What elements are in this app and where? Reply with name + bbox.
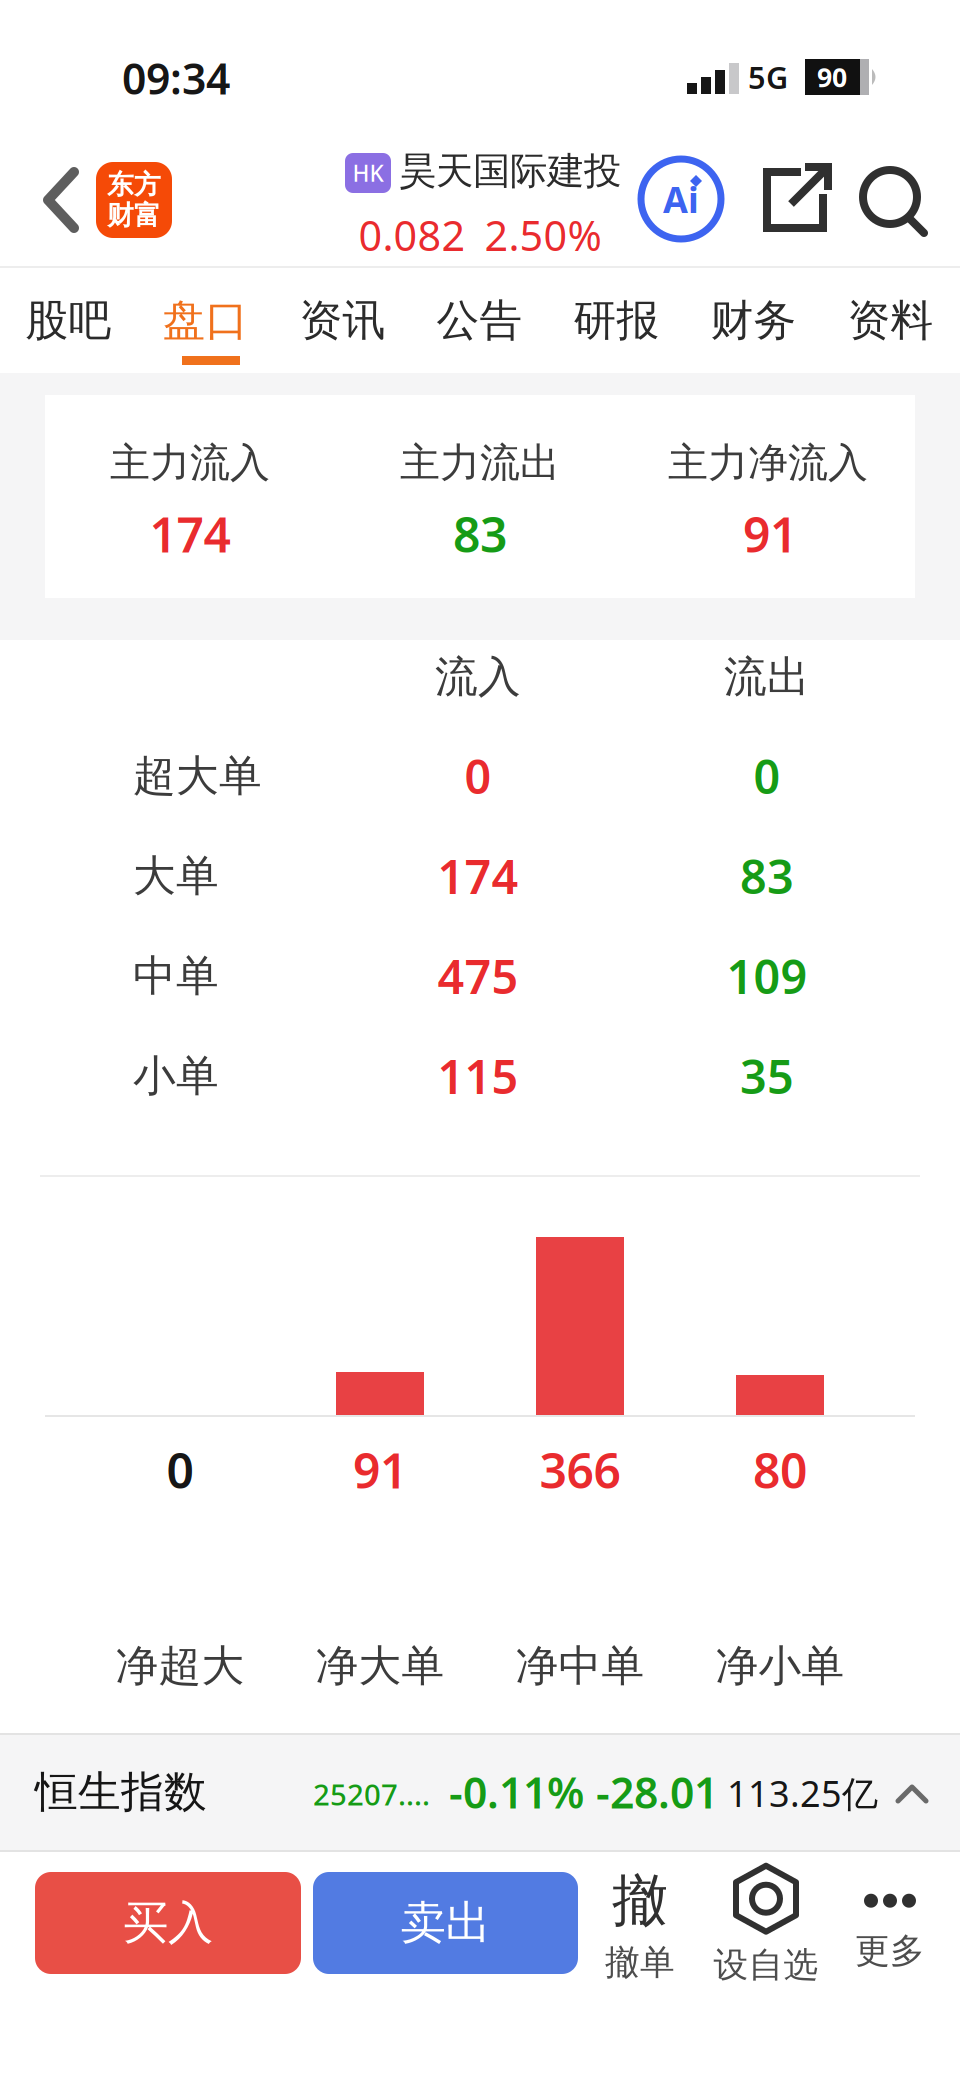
staticText: 2.50% — [484, 208, 601, 262]
staticText: 91 — [743, 502, 797, 566]
button[interactable]: 盘口 — [137, 268, 274, 373]
staticText: 35 — [740, 1045, 794, 1107]
staticText: 中单 — [133, 950, 219, 1002]
button[interactable]: 财务 — [685, 268, 822, 373]
staticText: 115 — [437, 1045, 518, 1107]
button[interactable]: 公告 — [411, 268, 548, 373]
staticText: 0 — [753, 745, 780, 807]
staticText: 小单 — [133, 1050, 219, 1102]
staticText: -28.01 — [596, 1764, 718, 1820]
button[interactable]: 设自选 — [696, 1862, 836, 1988]
staticText: 109 — [726, 945, 807, 1007]
staticText: 净大单 — [315, 1640, 444, 1692]
staticText: 设自选 — [713, 1944, 818, 1986]
staticText: 公告 — [436, 294, 522, 347]
staticText: 超大单 — [133, 750, 262, 802]
button[interactable]: 股吧 — [0, 268, 137, 373]
staticText: 大单 — [133, 850, 219, 902]
button[interactable]: 资料 — [822, 268, 959, 373]
staticText: 90 — [817, 59, 847, 95]
staticText: 83 — [740, 845, 794, 907]
staticText: 股吧 — [25, 294, 111, 347]
staticText: 撤 — [612, 1866, 668, 1935]
staticText: 174 — [437, 845, 518, 907]
staticText: 盘口 — [162, 294, 248, 347]
staticText: 475 — [437, 945, 518, 1007]
staticText: 80 — [753, 1438, 807, 1502]
staticText: 东方 — [107, 168, 161, 201]
button[interactable]: 买入 — [35, 1872, 301, 1974]
staticText: 流入 — [435, 651, 521, 703]
button[interactable]: 更多 — [840, 1878, 940, 1988]
button[interactable]: 分享 — [755, 160, 835, 240]
staticText: 更多 — [855, 1930, 925, 1972]
staticText: 财富 — [107, 199, 161, 232]
staticText: 91 — [353, 1438, 407, 1502]
staticText: 净小单 — [715, 1640, 844, 1692]
staticText: 财务 — [710, 294, 796, 347]
staticText: 366 — [539, 1438, 620, 1502]
staticText: 09:34 — [122, 50, 230, 106]
button[interactable]: 恒生指数 — [0, 1733, 960, 1852]
button[interactable]: 撤 — [585, 1862, 695, 1988]
staticText: 174 — [149, 502, 230, 566]
staticText: 撤单 — [605, 1941, 675, 1984]
staticText: -0.11% — [449, 1764, 584, 1820]
staticText: HK — [352, 158, 383, 188]
staticText: 主力流入 — [110, 438, 270, 487]
staticText: 113.25亿 — [727, 1769, 878, 1817]
staticText: Ai — [663, 175, 699, 223]
button[interactable]: 资讯 — [274, 268, 411, 373]
staticText: 昊天国际建投 — [399, 148, 621, 194]
staticText: 0.082 — [358, 208, 465, 262]
staticText: 研报 — [573, 294, 659, 347]
staticText: 主力流出 — [400, 438, 560, 487]
staticText: 主力净流入 — [668, 438, 868, 487]
staticText: 0 — [166, 1438, 193, 1502]
button[interactable]: 东方财富 — [96, 162, 172, 238]
staticText: 83 — [453, 502, 507, 566]
staticText: 净中单 — [515, 1640, 644, 1692]
staticText: 资料 — [847, 294, 933, 347]
button[interactable]: AI 助手 — [638, 156, 724, 242]
staticText: 25207.... — [313, 1774, 430, 1813]
staticText: 0 — [464, 745, 491, 807]
staticText: 恒生指数 — [35, 1766, 207, 1818]
button[interactable]: 搜索 — [852, 159, 932, 239]
staticText: 卖出 — [400, 1895, 490, 1951]
button[interactable]: 卖出 — [313, 1872, 578, 1974]
staticText: 净超大 — [115, 1640, 244, 1692]
staticText: 5G — [748, 57, 788, 97]
button[interactable]: 研报 — [548, 268, 685, 373]
staticText: 流出 — [724, 651, 810, 703]
staticText: 买入 — [123, 1895, 213, 1951]
button[interactable]: Back — [30, 155, 100, 245]
staticText: 资讯 — [299, 294, 385, 347]
